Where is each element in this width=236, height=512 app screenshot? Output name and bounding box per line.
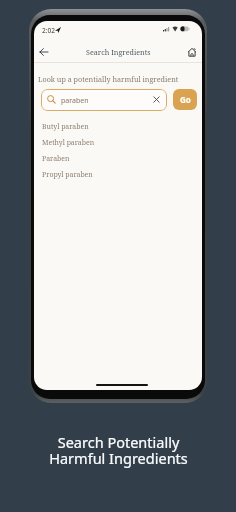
button[interactable]: paraben [41,89,167,111]
staticText: Methyl paraben [42,138,95,147]
staticText: Look up a potentially harmful ingredient [38,74,179,84]
staticText: Paraben [42,154,70,163]
button[interactable] [185,45,199,59]
staticText: paraben [61,96,89,106]
button[interactable] [37,45,51,59]
staticText: Butyl paraben [42,122,89,131]
staticText: Go [180,94,191,105]
button[interactable]: Paraben [34,150,202,166]
staticText: Search Ingredients [86,47,151,57]
button[interactable] [153,96,160,103]
button[interactable]: Butyl paraben [34,118,202,134]
staticText: Propyl paraben [42,170,93,179]
button[interactable]: Propyl paraben [34,166,202,182]
staticText: Search Potentially Harmful Ingredients [49,432,188,469]
staticText: 2:02 [42,26,55,35]
button[interactable]: Methyl paraben [34,134,202,150]
button[interactable]: Go [173,89,197,110]
